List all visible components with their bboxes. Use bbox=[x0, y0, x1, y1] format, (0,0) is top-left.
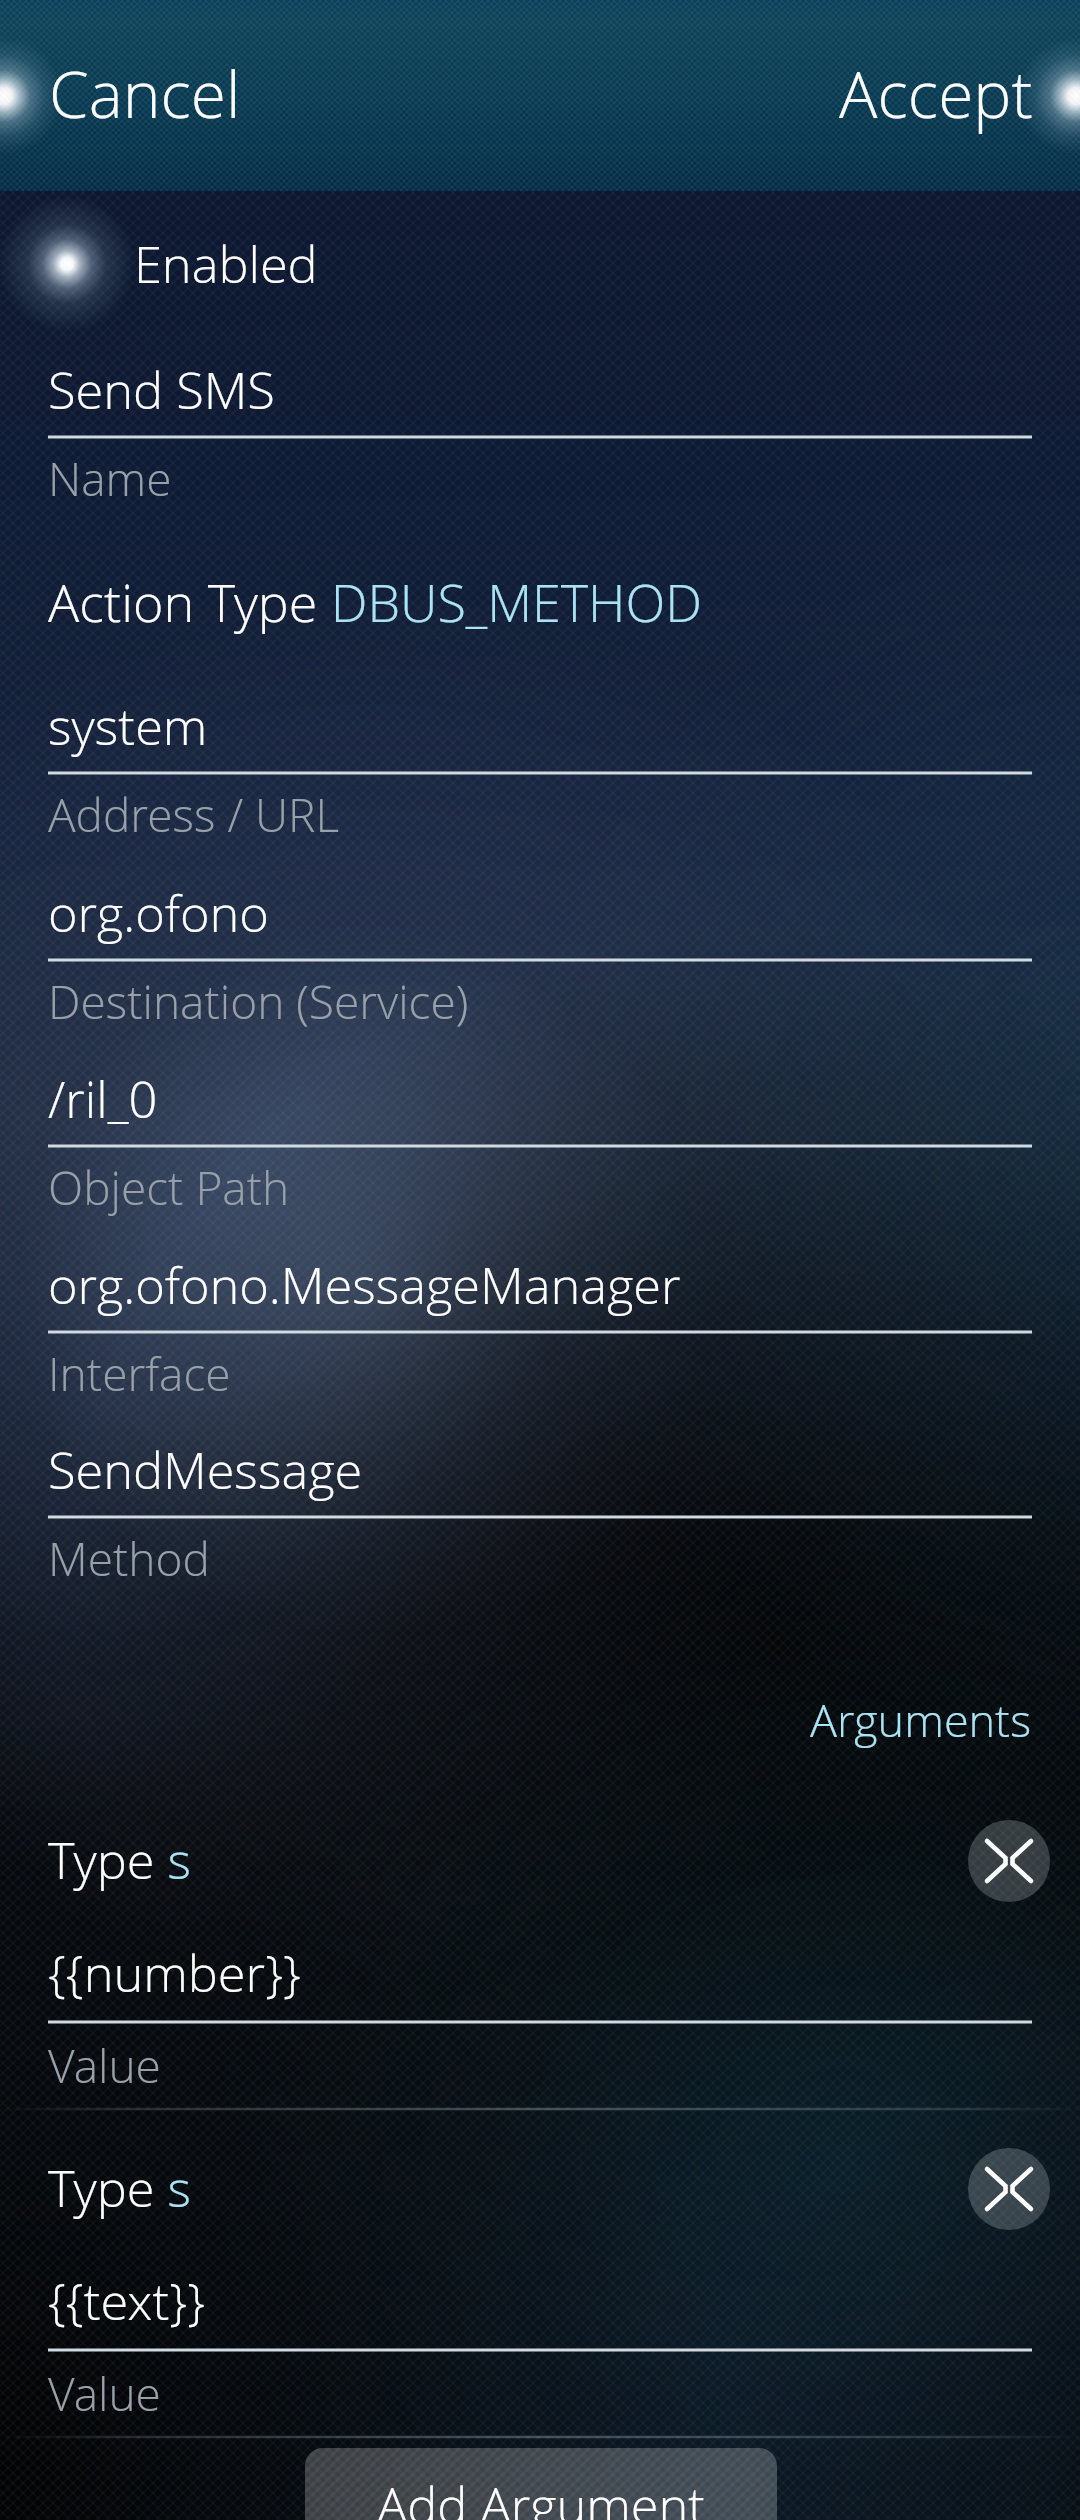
button[interactable]: Remove argument bbox=[968, 1820, 1050, 1902]
button[interactable] bbox=[0, 1246, 1080, 1414]
staticText: Name bbox=[48, 447, 172, 510]
button[interactable]: Accept bbox=[680, 0, 1080, 191]
staticText: Value bbox=[48, 2034, 161, 2097]
button[interactable] bbox=[0, 195, 1080, 340]
staticText: {{number}} bbox=[48, 1938, 301, 2007]
button[interactable] bbox=[0, 1060, 1080, 1228]
staticText: /ril_0 bbox=[48, 1064, 158, 1133]
staticText: Arguments bbox=[810, 1689, 1032, 1750]
staticText: Address / URL bbox=[48, 783, 340, 846]
staticText: Value bbox=[48, 2362, 161, 2425]
button[interactable] bbox=[0, 2149, 1080, 2259]
staticText: org.ofono bbox=[48, 878, 269, 947]
button[interactable] bbox=[0, 1821, 1080, 1931]
button[interactable] bbox=[0, 874, 1080, 1042]
button[interactable] bbox=[0, 565, 1080, 675]
staticText: Type s bbox=[48, 1825, 192, 1894]
staticText: Interface bbox=[48, 1342, 231, 1405]
staticText: Type s bbox=[48, 2153, 192, 2222]
button[interactable] bbox=[0, 2262, 1080, 2430]
staticText: system bbox=[48, 691, 208, 760]
staticText: org.ofono.MessageManager bbox=[48, 1250, 681, 1319]
staticText: {{text}} bbox=[48, 2266, 205, 2335]
staticText: SendMessage bbox=[48, 1435, 363, 1504]
button[interactable]: Add Argument bbox=[305, 2448, 777, 2520]
staticText: Object Path bbox=[48, 1156, 290, 1219]
button[interactable] bbox=[0, 1934, 1080, 2102]
button[interactable] bbox=[0, 1431, 1080, 1599]
staticText: Enabled bbox=[134, 229, 318, 298]
staticText: Destination (Service) bbox=[48, 970, 469, 1033]
button[interactable]: Cancel bbox=[0, 0, 400, 191]
staticText: Send SMS bbox=[48, 355, 275, 424]
staticText: Accept bbox=[839, 50, 1033, 137]
button[interactable] bbox=[0, 687, 1080, 855]
button[interactable] bbox=[0, 351, 1080, 519]
staticText: Action Type DBUS_METHOD bbox=[48, 566, 702, 637]
button[interactable]: Remove argument bbox=[968, 2148, 1050, 2230]
staticText: Add Argument bbox=[377, 2470, 706, 2520]
staticText: Method bbox=[48, 1527, 210, 1590]
staticText: Cancel bbox=[49, 50, 241, 137]
